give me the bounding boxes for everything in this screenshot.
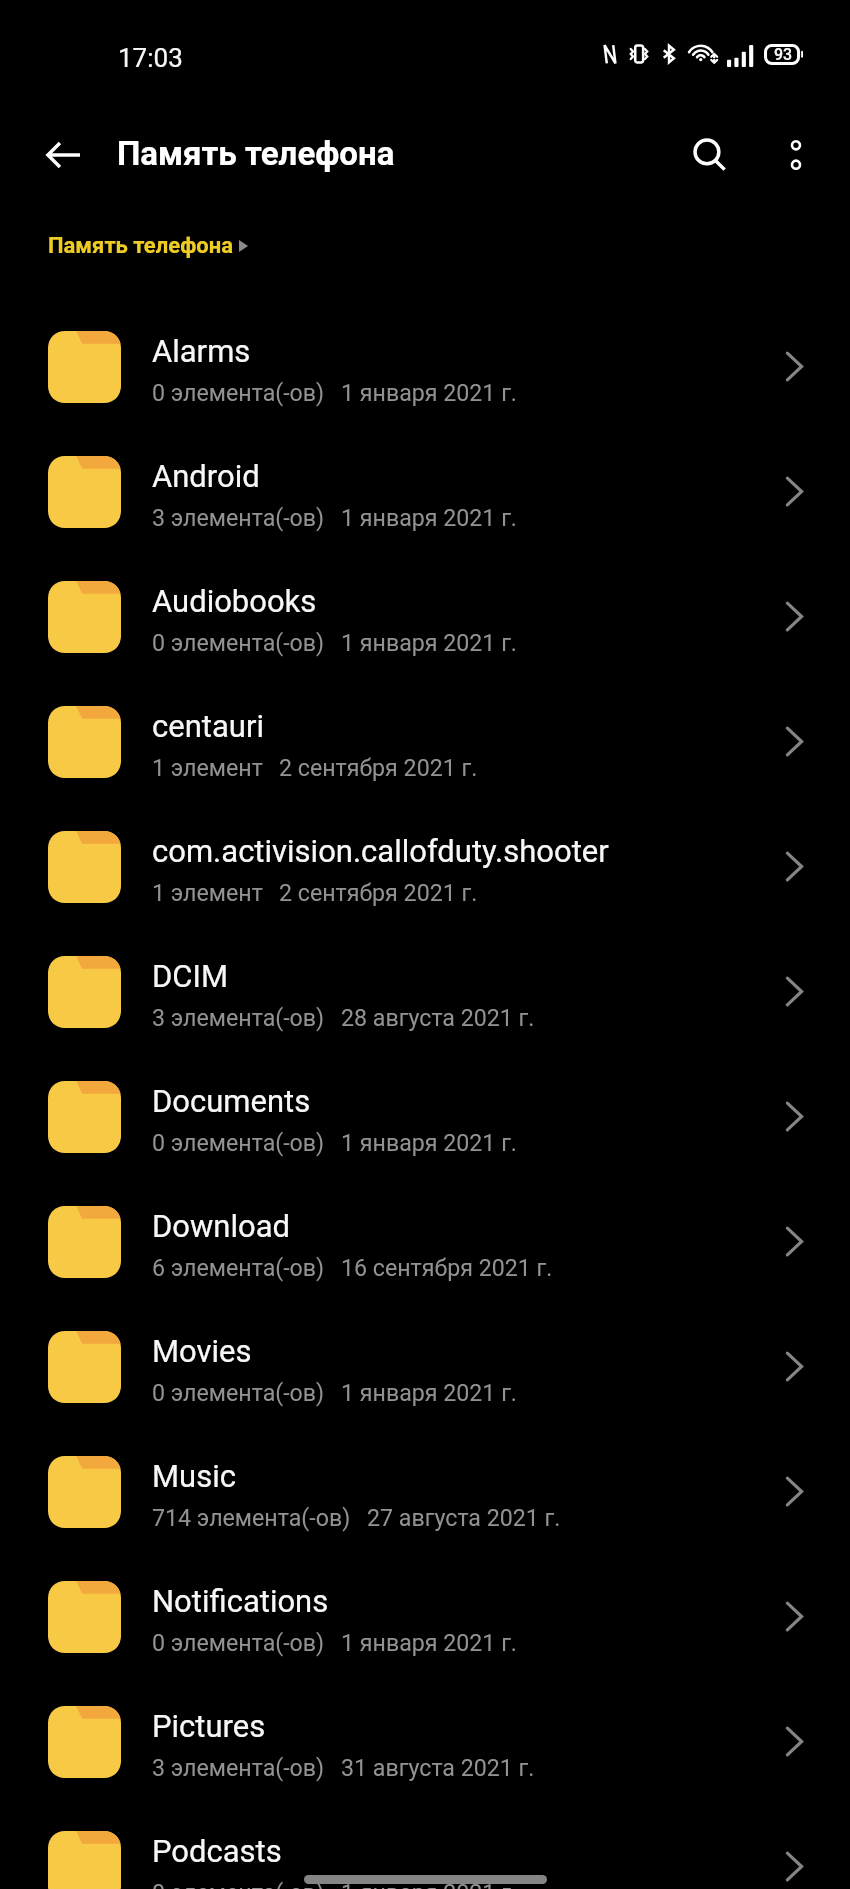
staticText: Movies: [152, 1333, 252, 1369]
staticText: 0 элемента(-ов): [152, 1629, 325, 1656]
button[interactable]: Open Alarms: [738, 304, 850, 429]
staticText: 2 сентября 2021 г.: [279, 754, 478, 781]
button[interactable]: Pictures: [0, 1679, 850, 1804]
button[interactable]: Open com.activision.callofduty.shooter: [738, 804, 850, 929]
staticText: Pictures: [152, 1708, 266, 1744]
staticText: 28 августа 2021 г.: [341, 1004, 535, 1031]
button[interactable]: Movies: [0, 1304, 850, 1429]
button[interactable]: Open Music: [738, 1429, 850, 1554]
staticText: 27 августа 2021 г.: [367, 1504, 561, 1531]
staticText: 1 января 2021 г.: [341, 1629, 517, 1656]
button[interactable]: Alarms: [0, 304, 850, 429]
staticText: Alarms: [152, 333, 251, 369]
button[interactable]: Android: [0, 429, 850, 554]
staticText: 1 января 2021 г.: [341, 629, 517, 656]
button[interactable]: Music: [0, 1429, 850, 1554]
staticText: 0 элемента(-ов): [152, 1129, 325, 1156]
staticText: 0 элемента(-ов): [152, 629, 325, 656]
button[interactable]: Open Movies: [738, 1304, 850, 1429]
staticText: 1 января 2021 г.: [341, 1879, 517, 1889]
staticText: Music: [152, 1458, 236, 1494]
staticText: 93: [774, 45, 793, 64]
staticText: Download: [152, 1208, 291, 1244]
button[interactable]: Search: [664, 113, 756, 196]
button[interactable]: Documents: [0, 1054, 850, 1179]
staticText: Documents: [152, 1083, 311, 1119]
staticText: 1 элемент: [152, 879, 263, 906]
button[interactable]: Open Notifications: [738, 1554, 850, 1679]
staticText: com.activision.callofduty.shooter: [152, 833, 609, 869]
staticText: 1 января 2021 г.: [341, 504, 517, 531]
staticText: 16 сентября 2021 г.: [341, 1254, 553, 1281]
staticText: 1 элемент: [152, 754, 263, 781]
button[interactable]: Back: [30, 122, 96, 188]
staticText: 1 января 2021 г.: [341, 379, 517, 406]
button[interactable]: Audiobooks: [0, 554, 850, 679]
button[interactable]: Open DCIM: [738, 929, 850, 1054]
button[interactable]: Open centauri: [738, 679, 850, 804]
button[interactable]: Память телефона: [46, 229, 250, 263]
staticText: centauri: [152, 708, 264, 744]
staticText: 31 августа 2021 г.: [341, 1754, 535, 1781]
button[interactable]: Open Android: [738, 429, 850, 554]
staticText: Память телефона: [117, 134, 395, 173]
staticText: 0 элемента(-ов): [152, 379, 325, 406]
staticText: 1 января 2021 г.: [341, 1379, 517, 1406]
button[interactable]: Open Download: [738, 1179, 850, 1304]
button[interactable]: Notifications: [0, 1554, 850, 1679]
staticText: Podcasts: [152, 1833, 282, 1869]
staticText: Notifications: [152, 1583, 329, 1619]
button[interactable]: Open Podcasts: [738, 1804, 850, 1889]
button[interactable]: centauri: [0, 679, 850, 804]
button[interactable]: DCIM: [0, 929, 850, 1054]
staticText: Память телефона: [48, 233, 233, 259]
staticText: 0 элемента(-ов): [152, 1379, 325, 1406]
button[interactable]: Open Pictures: [738, 1679, 850, 1804]
staticText: 17:03: [118, 43, 183, 73]
button[interactable]: Open Documents: [738, 1054, 850, 1179]
button[interactable]: Podcasts: [0, 1804, 850, 1889]
staticText: DCIM: [152, 958, 229, 994]
button[interactable]: More options: [756, 115, 836, 195]
staticText: 714 элемента(-ов): [152, 1504, 351, 1531]
staticText: 6 элемента(-ов): [152, 1254, 325, 1281]
staticText: Audiobooks: [152, 583, 317, 619]
staticText: 3 элемента(-ов): [152, 1004, 325, 1031]
staticText: 0 элемента(-ов): [152, 1879, 325, 1889]
button[interactable]: Open Audiobooks: [738, 554, 850, 679]
button[interactable]: com.activision.callofduty.shooter: [0, 804, 850, 929]
staticText: Android: [152, 458, 260, 494]
button[interactable]: Download: [0, 1179, 850, 1304]
staticText: 1 января 2021 г.: [341, 1129, 517, 1156]
staticText: 3 элемента(-ов): [152, 1754, 325, 1781]
staticText: 2 сентября 2021 г.: [279, 879, 478, 906]
staticText: 3 элемента(-ов): [152, 504, 325, 531]
